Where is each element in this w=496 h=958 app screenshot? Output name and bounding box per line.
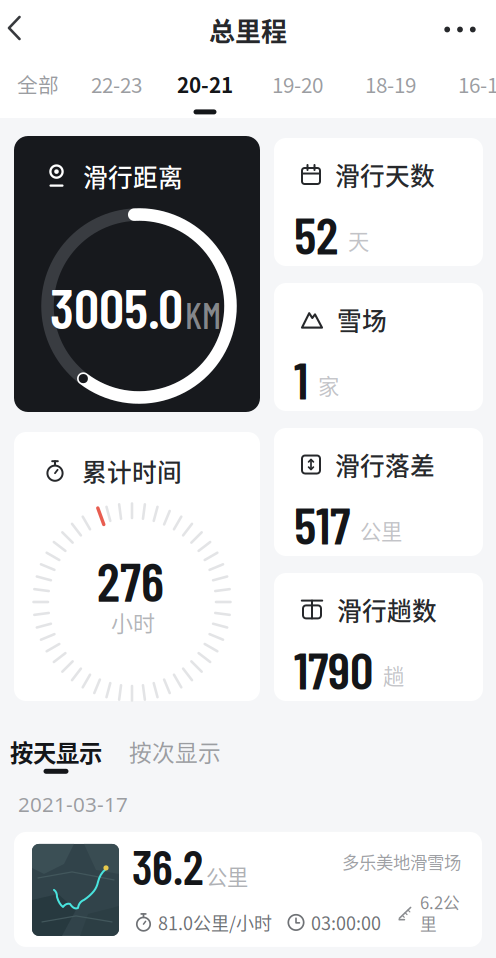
- staticText: 小时: [111, 606, 155, 638]
- staticText: 家: [318, 370, 339, 401]
- staticText: 3005.0: [50, 273, 183, 340]
- button[interactable]: 18-19: [365, 69, 416, 114]
- button[interactable]: 36.2: [14, 832, 482, 947]
- staticText: 16-17: [458, 69, 496, 99]
- staticText: 滑行天数: [335, 157, 435, 192]
- staticText: 累计时间: [82, 453, 182, 489]
- staticText: 18-19: [365, 69, 416, 99]
- button[interactable]: 20-21: [177, 69, 233, 114]
- staticText: 81.0公里/小时: [158, 909, 272, 935]
- staticText: 天: [348, 225, 369, 256]
- staticText: 滑行距离: [83, 158, 183, 194]
- staticText: 20-21: [177, 69, 233, 99]
- button[interactable]: 19-20: [272, 69, 323, 114]
- staticText: 22-23: [91, 69, 142, 99]
- staticText: 276: [97, 548, 164, 612]
- button[interactable]: 滑行距离: [14, 136, 260, 412]
- staticText: 03:00:00: [311, 909, 381, 935]
- staticText: KM: [185, 293, 221, 336]
- button[interactable]: 滑行趟数: [274, 573, 483, 701]
- button[interactable]: 滑行落差: [274, 428, 483, 556]
- staticText: 2021-03-17: [18, 790, 128, 818]
- staticText: 公里: [206, 860, 248, 891]
- staticText: 趟: [383, 660, 404, 691]
- button[interactable]: 雪场: [274, 283, 483, 411]
- staticText: 滑行落差: [335, 447, 435, 482]
- button[interactable]: 累计时间: [14, 432, 260, 701]
- button[interactable]: 按天显示: [10, 735, 102, 774]
- staticText: 里: [420, 911, 437, 935]
- staticText: 52: [294, 202, 338, 265]
- staticText: 19-20: [272, 69, 323, 99]
- staticText: 1: [294, 347, 308, 410]
- staticText: 1790: [294, 637, 373, 700]
- button[interactable]: 返回: [0, 0, 44, 56]
- staticText: 公里: [360, 515, 402, 546]
- staticText: 36.2: [132, 837, 203, 894]
- staticText: 按次显示: [129, 735, 221, 768]
- staticText: 滑行趟数: [337, 592, 437, 627]
- button[interactable]: 16-17: [458, 69, 496, 114]
- button[interactable]: 22-23: [91, 69, 142, 114]
- staticText: 总里程: [209, 11, 287, 49]
- button[interactable]: 全部: [17, 69, 59, 114]
- button[interactable]: 滑行天数: [274, 138, 483, 266]
- button[interactable]: 更多: [434, 0, 486, 56]
- staticText: 6.2公: [420, 890, 460, 914]
- staticText: 多乐美地滑雪场: [342, 849, 461, 874]
- staticText: 517: [294, 492, 350, 555]
- staticText: 按天显示: [10, 735, 102, 769]
- staticText: 全部: [17, 69, 59, 99]
- button[interactable]: 按次显示: [129, 735, 221, 773]
- staticText: 雪场: [337, 302, 387, 337]
